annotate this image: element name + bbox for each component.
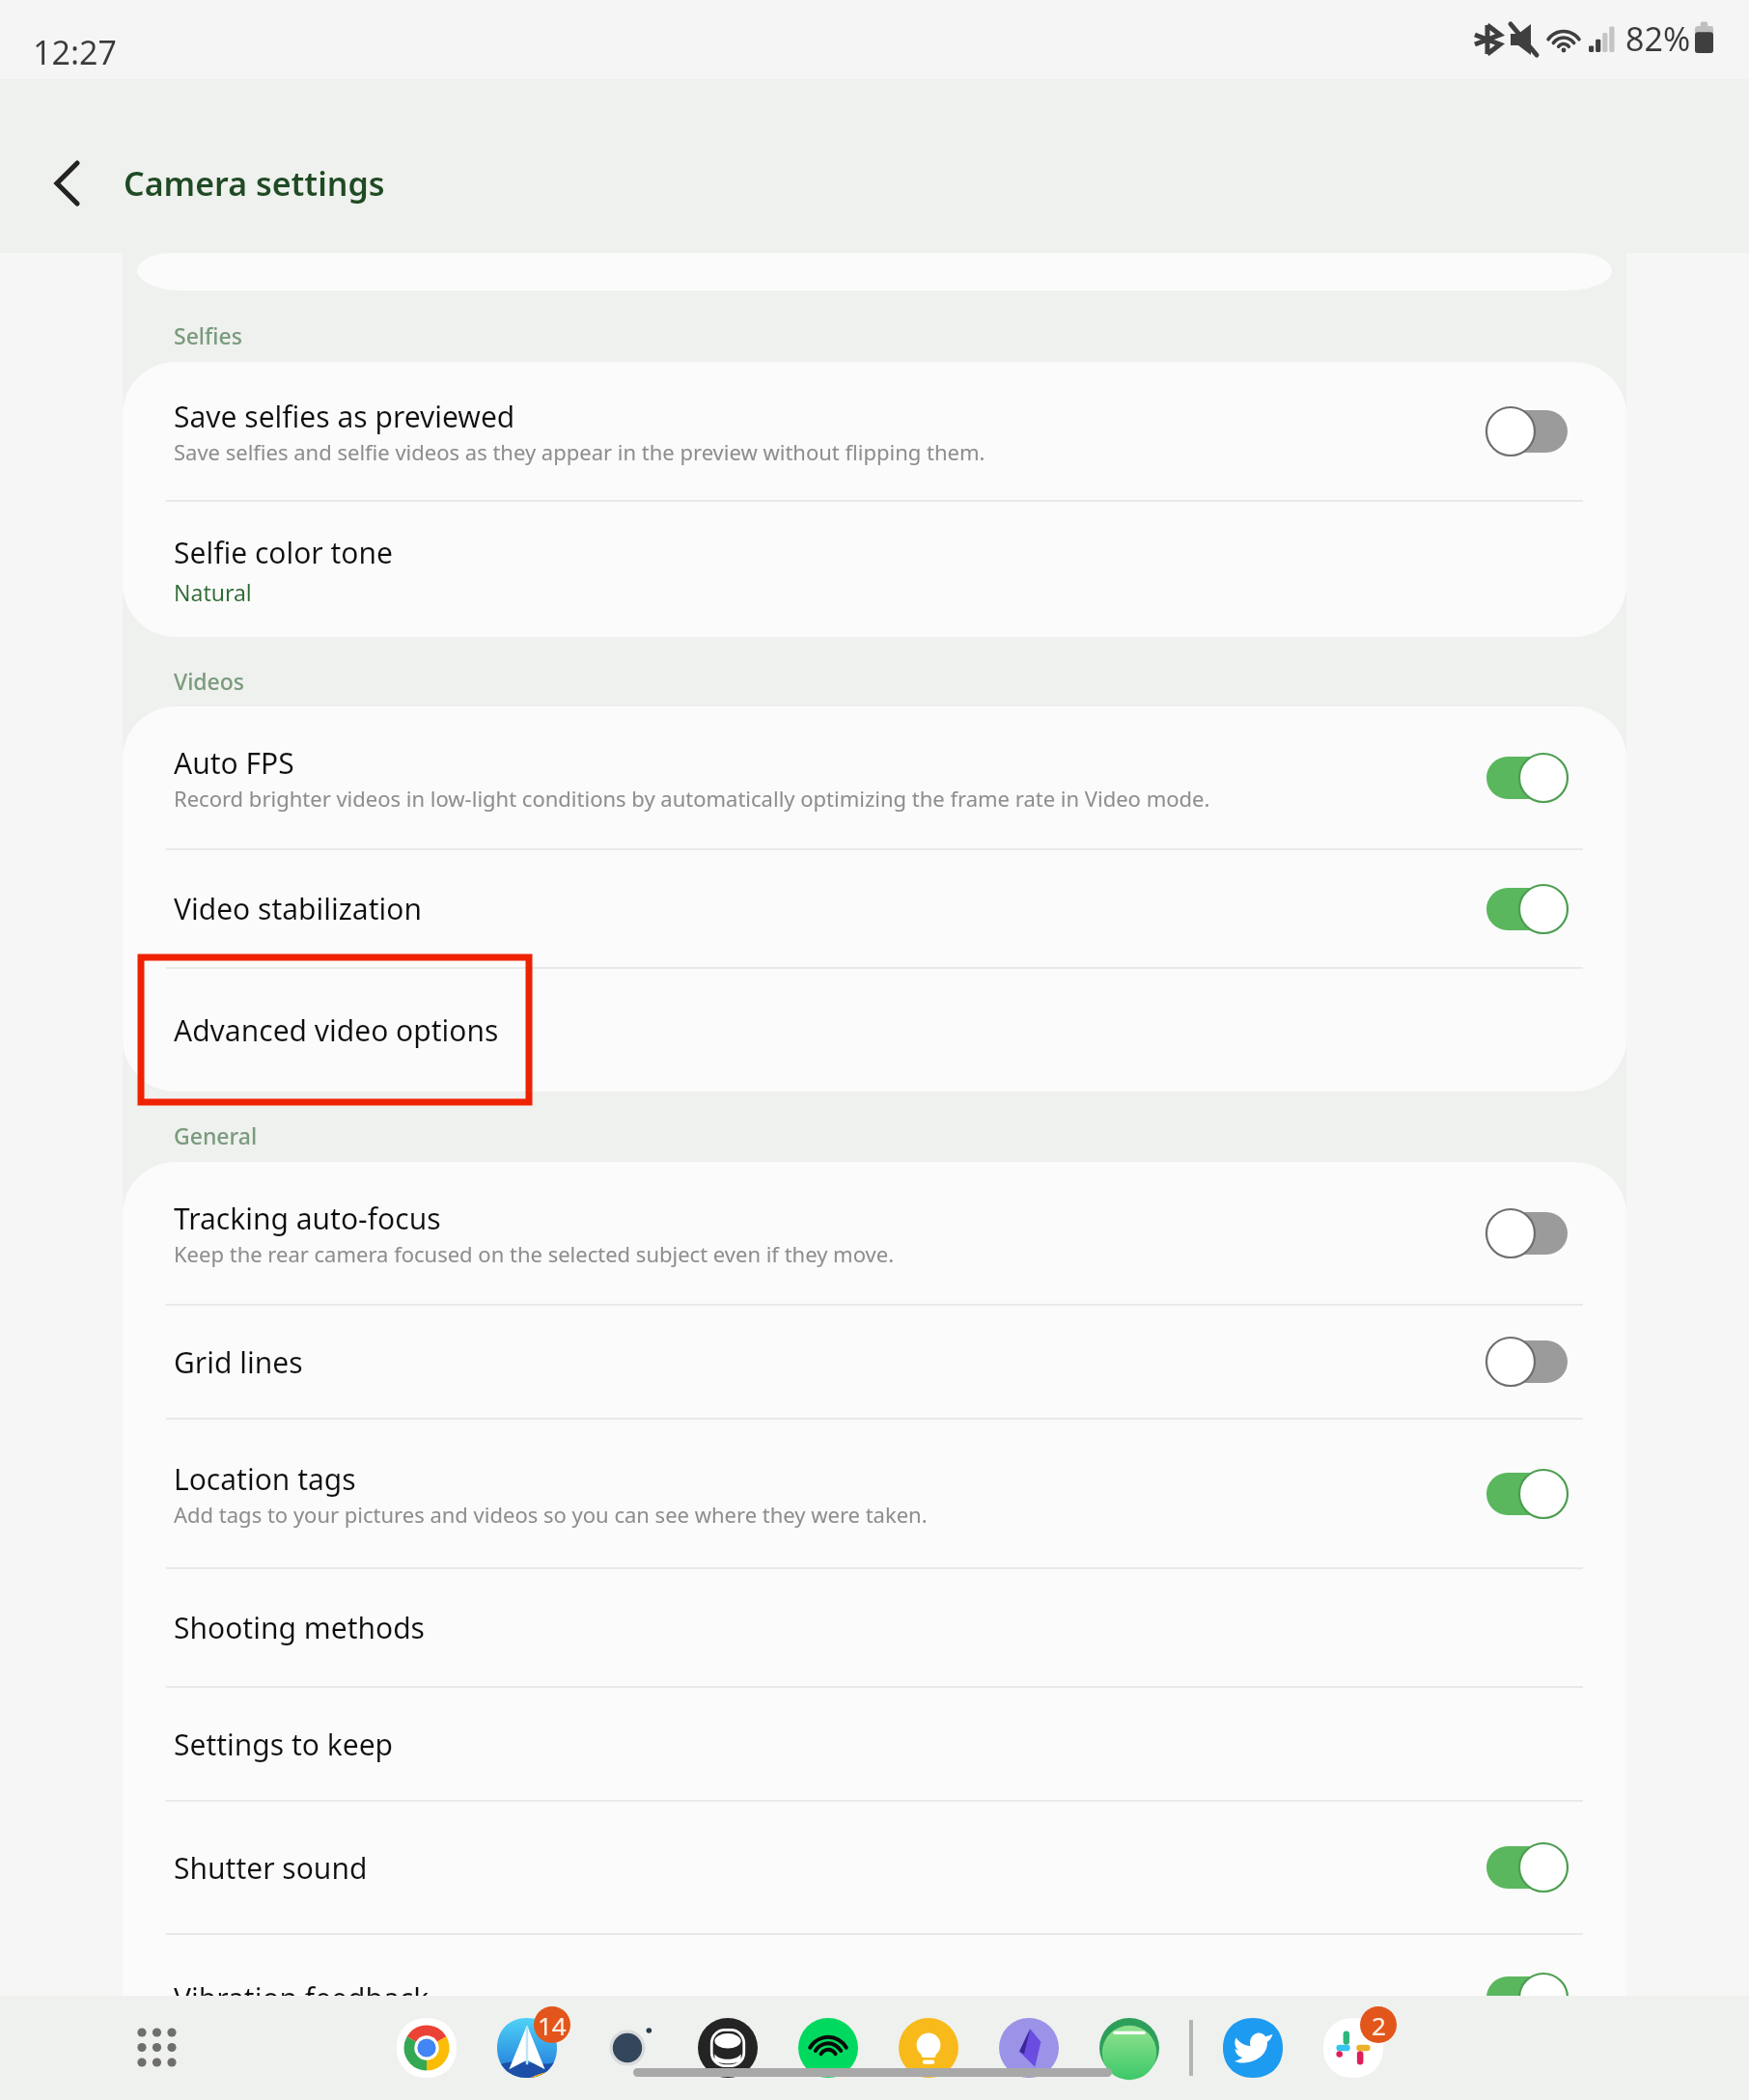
button[interactable]: Auto FPS [123, 706, 1626, 848]
button[interactable]: Shooting methods [123, 1569, 1626, 1686]
button[interactable]: Video stabilization [123, 850, 1626, 967]
staticText: Natural [174, 577, 252, 607]
staticText: Auto FPS [174, 743, 294, 783]
button[interactable]: Location tags [123, 1420, 1626, 1567]
button[interactable]: App [1079, 1998, 1180, 2098]
staticText: General [174, 1120, 258, 1150]
staticText: Shutter sound [174, 1848, 368, 1888]
staticText: Save selfies and selfie videos as they a… [174, 437, 986, 466]
button[interactable]: Selfie color tone [123, 502, 1626, 637]
button[interactable]: Tracking auto-focus [123, 1162, 1626, 1304]
button[interactable]: App [577, 1998, 678, 2098]
button[interactable]: App [979, 1998, 1079, 2098]
staticText: Add tags to your pictures and videos so … [174, 1500, 928, 1529]
button[interactable]: App [678, 1998, 778, 2098]
button[interactable]: Chrome [376, 1998, 477, 2098]
staticText: 82% [1625, 16, 1691, 61]
staticText: Advanced video options [174, 1010, 499, 1050]
button[interactable]: Spotify [778, 1998, 878, 2098]
staticText: 2 [1372, 2008, 1386, 2042]
staticText: Location tags [174, 1459, 356, 1499]
button[interactable]: Shutter sound [123, 1802, 1626, 1933]
button[interactable]: Spark [477, 1998, 577, 2098]
staticText: Tracking auto-focus [174, 1199, 441, 1238]
staticText: Selfies [174, 320, 242, 350]
staticText: Vibration feedback [174, 1978, 430, 2018]
button[interactable]: Settings to keep [123, 1688, 1626, 1800]
staticText: 14 [538, 2008, 567, 2042]
staticText: Save selfies as previewed [174, 397, 515, 436]
staticText: Shooting methods [174, 1608, 425, 1647]
staticText: Keep the rear camera focused on the sele… [174, 1239, 895, 1268]
staticText: Video stabilization [174, 889, 422, 928]
staticText: 12:27 [33, 30, 117, 74]
button[interactable]: All apps [122, 2012, 193, 2084]
staticText: Record brighter videos in low-light cond… [174, 784, 1210, 813]
staticText: Videos [174, 666, 245, 696]
button[interactable]: App [878, 1998, 979, 2098]
button[interactable]: Save selfies as previewed [123, 362, 1626, 500]
button[interactable]: Advanced video options [123, 969, 1626, 1091]
staticText: Settings to keep [174, 1725, 394, 1764]
button[interactable]: Grid lines [123, 1306, 1626, 1418]
staticText: Camera settings [124, 161, 385, 206]
staticText: Selfie color tone [174, 533, 393, 572]
staticText: Grid lines [174, 1342, 303, 1382]
button[interactable]: Slack [1303, 1998, 1403, 2098]
button[interactable]: Vibration feedback [123, 1935, 1626, 2060]
button[interactable]: Back [26, 125, 107, 207]
button[interactable]: Twitter [1203, 1998, 1303, 2098]
